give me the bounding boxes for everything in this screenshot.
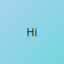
staticText: Hi (26, 25, 37, 39)
